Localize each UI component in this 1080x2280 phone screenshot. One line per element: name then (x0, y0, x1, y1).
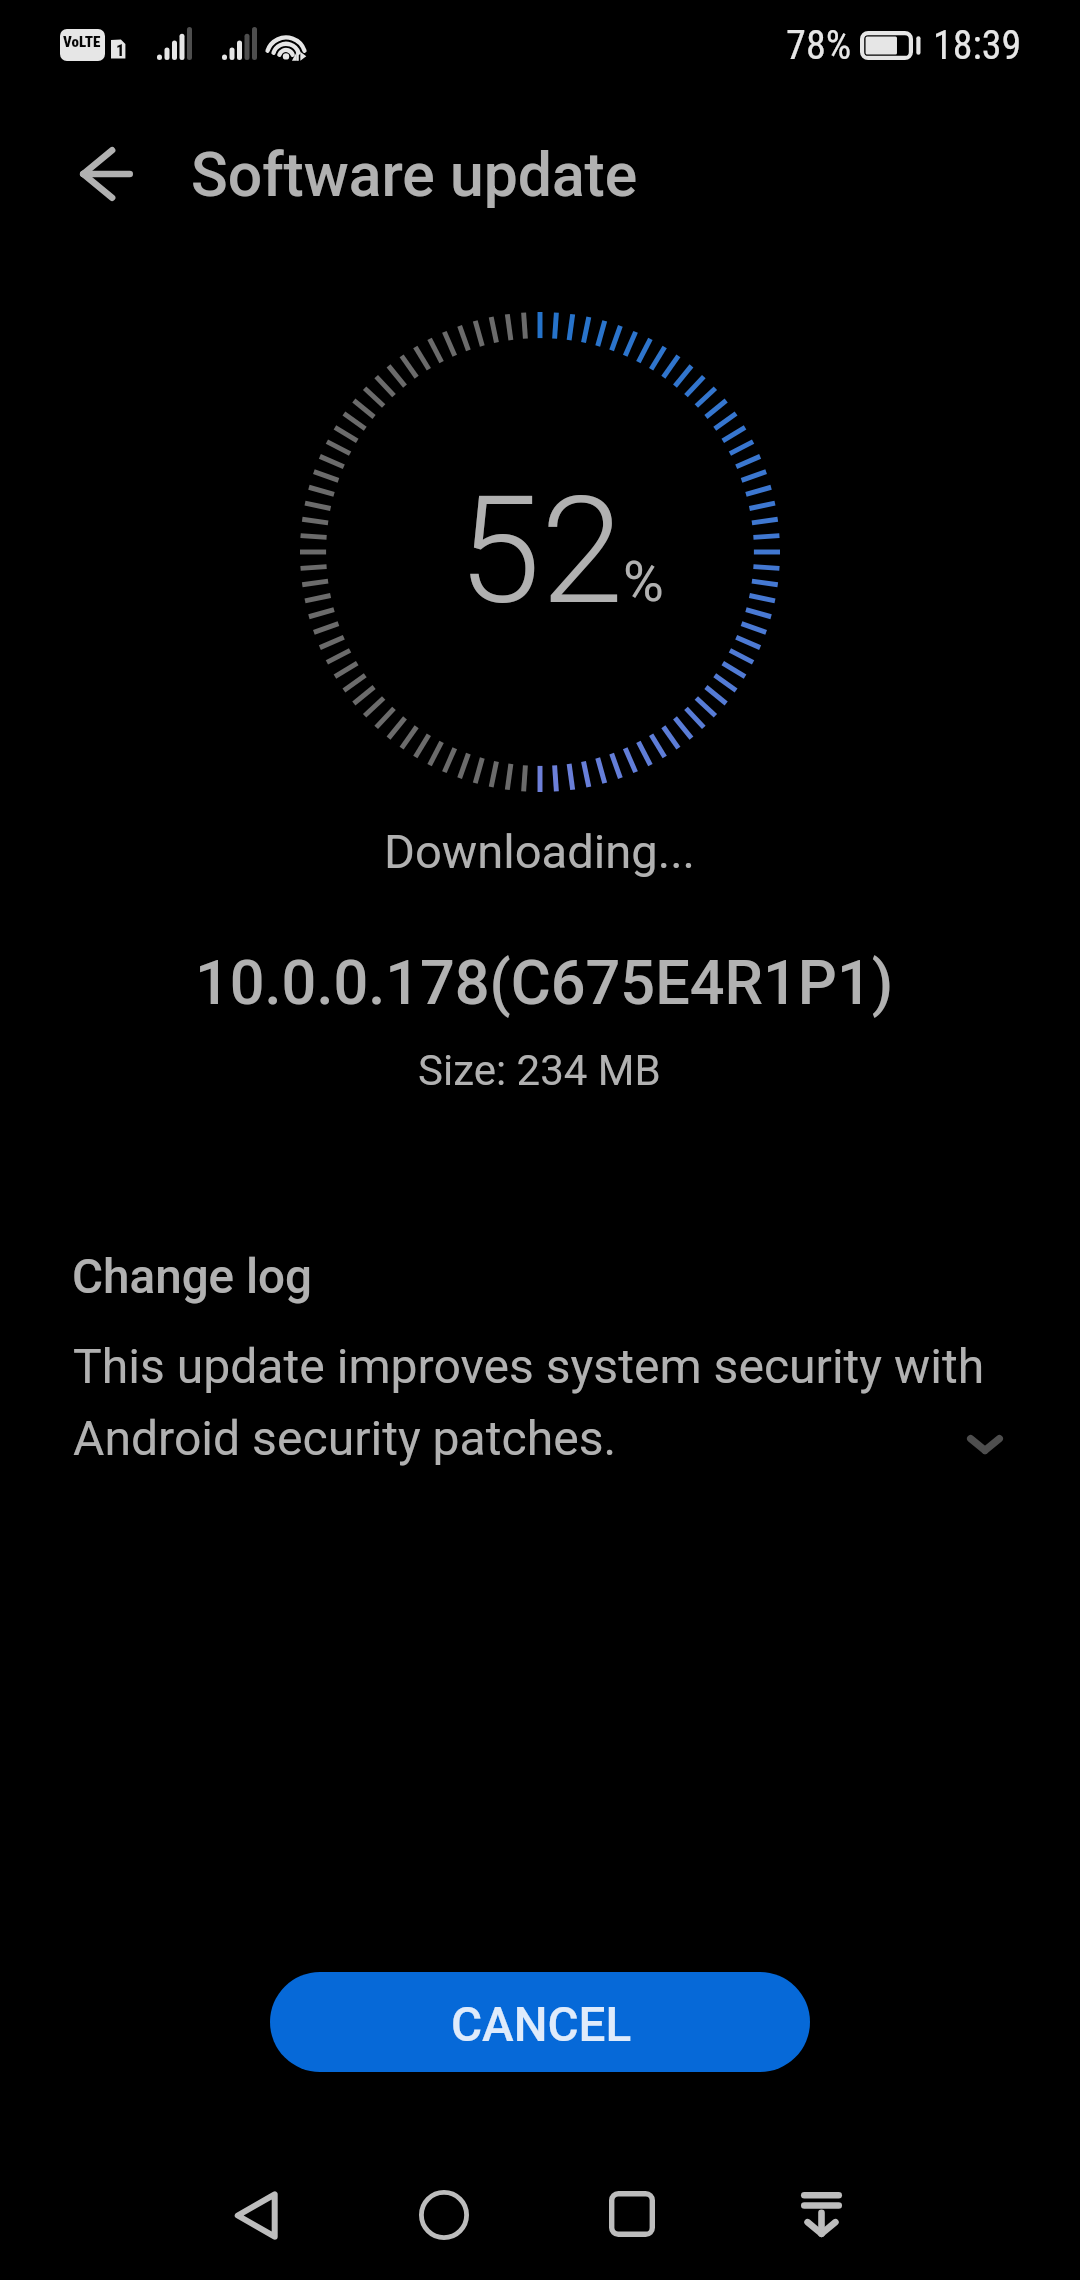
staticText: 18:39 (933, 22, 1022, 69)
button[interactable]: Home (384, 2155, 504, 2275)
staticText: Downloading... (384, 824, 696, 879)
staticText: CANCEL (451, 1997, 632, 2053)
staticText: VoLTE (63, 33, 101, 51)
staticText: Change log (72, 1249, 313, 1305)
button[interactable]: Hide navigation bar (761, 2154, 881, 2274)
staticText: 10.0.0.178(C675E4R1P1) (195, 947, 894, 1019)
button[interactable]: CANCEL (270, 1972, 810, 2072)
button[interactable]: Back (28, 96, 184, 252)
button[interactable]: Recent apps (572, 2154, 692, 2274)
staticText: % (623, 549, 664, 614)
button[interactable]: This update improves system security wit… (0, 1329, 1080, 1497)
staticText: This update improves system security wit… (73, 1338, 991, 1467)
staticText: Software update (191, 140, 638, 211)
staticText: 1 (116, 41, 125, 60)
staticText: 52 (458, 464, 624, 639)
button[interactable]: Back (196, 2155, 316, 2275)
staticText: Size: 234 MB (418, 1046, 661, 1095)
staticText: 78% (786, 22, 852, 69)
